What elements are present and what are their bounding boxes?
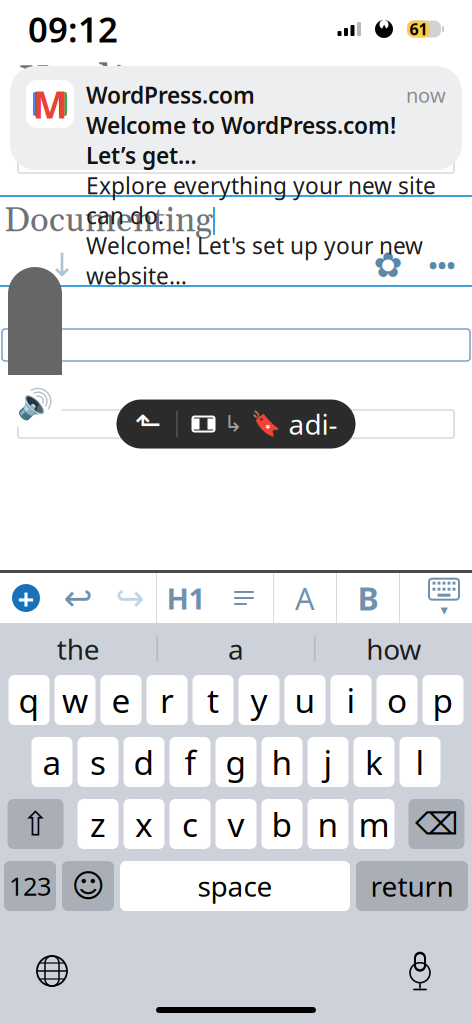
- button[interactable]: s: [77, 737, 118, 787]
- button[interactable]: d: [123, 737, 164, 787]
- staticText: now: [406, 82, 446, 108]
- staticText: ☺: [71, 868, 104, 904]
- button[interactable]: Dismiss keyboard: [416, 573, 472, 623]
- button[interactable]: n: [307, 799, 348, 849]
- staticText: f: [184, 740, 195, 784]
- staticText: ↓: [48, 247, 75, 283]
- staticText: t: [207, 678, 219, 722]
- staticText: 123: [9, 869, 51, 903]
- button[interactable]: Next keyboard: [22, 948, 82, 994]
- staticText: ⇧: [21, 805, 49, 843]
- button[interactable]: f: [169, 737, 210, 787]
- staticText: k: [365, 740, 383, 784]
- button[interactable]: r: [146, 675, 187, 725]
- button[interactable]: Dictate: [390, 948, 450, 994]
- staticText: A: [295, 578, 315, 618]
- button[interactable]: Text color: [274, 573, 336, 623]
- button[interactable]: H1: [157, 573, 215, 623]
- staticText: •••: [428, 249, 455, 281]
- staticText: Welcome! Let's set up your new website…: [86, 230, 423, 291]
- button[interactable]: z: [77, 799, 118, 849]
- staticText: x: [135, 802, 153, 846]
- button[interactable]: m: [353, 799, 394, 849]
- staticText: o: [387, 678, 407, 722]
- button[interactable]: k: [353, 737, 394, 787]
- button[interactable]: a: [31, 737, 72, 787]
- button[interactable]: the: [0, 623, 157, 675]
- staticText: c: [182, 802, 198, 846]
- button[interactable]: Emoji: [62, 861, 114, 911]
- button[interactable]: Add block: [0, 573, 52, 623]
- staticText: Heading: [288, 368, 337, 480]
- button[interactable]: h: [261, 737, 302, 787]
- staticText: 61: [409, 18, 427, 40]
- button[interactable]: Undo: [52, 573, 104, 623]
- staticText: y: [250, 678, 267, 722]
- button[interactable]: t: [192, 675, 233, 725]
- button[interactable]: b: [261, 799, 302, 849]
- button[interactable]: space: [120, 861, 350, 911]
- button[interactable]: ↳: [177, 400, 351, 448]
- button[interactable]: v: [215, 799, 256, 849]
- staticText: ↳: [223, 411, 242, 437]
- staticText: the: [57, 630, 100, 668]
- staticText: h: [271, 740, 292, 784]
- staticText: 🔖: [250, 410, 280, 438]
- staticText: z: [90, 802, 106, 846]
- button[interactable]: how: [315, 623, 472, 675]
- staticText: ⌫: [415, 807, 458, 841]
- staticText: e: [111, 678, 130, 722]
- button[interactable]: l: [399, 737, 440, 787]
- button[interactable]: o: [376, 675, 417, 725]
- button[interactable]: M: [10, 66, 462, 170]
- button[interactable]: Bold: [337, 573, 399, 623]
- staticText: WordPress.com: [86, 80, 255, 110]
- button[interactable]: Align: [215, 573, 273, 623]
- button[interactable]: g: [215, 737, 256, 787]
- staticText: B: [357, 577, 378, 619]
- staticText: space: [197, 867, 272, 905]
- button[interactable]: More options: [420, 245, 464, 285]
- button[interactable]: 123: [4, 861, 56, 911]
- staticText: M: [32, 79, 67, 129]
- staticText: b: [271, 802, 292, 846]
- staticText: H1: [166, 578, 205, 617]
- staticText: Explore everything your new site can do.: [86, 170, 436, 230]
- staticText: w: [62, 678, 88, 722]
- button[interactable]: Redo: [104, 573, 156, 623]
- staticText: Welcome to WordPress.com! Let’s get…: [86, 110, 396, 170]
- staticText: Documenting: [4, 199, 213, 243]
- staticText: s: [90, 740, 106, 784]
- staticText: i: [346, 678, 355, 722]
- button[interactable]: p: [422, 675, 463, 725]
- button[interactable]: x: [123, 799, 164, 849]
- staticText: 🔊: [16, 387, 53, 421]
- staticText: g: [225, 740, 246, 784]
- button[interactable]: c: [169, 799, 210, 849]
- staticText: ⬑: [135, 406, 162, 442]
- button[interactable]: e: [100, 675, 141, 725]
- button[interactable]: j: [307, 737, 348, 787]
- staticText: return: [370, 867, 453, 905]
- button[interactable]: w: [54, 675, 95, 725]
- staticText: m: [358, 802, 389, 846]
- button[interactable]: u: [284, 675, 325, 725]
- button[interactable]: Shift: [7, 799, 63, 849]
- staticText: l: [415, 740, 424, 784]
- staticText: j: [323, 740, 332, 784]
- staticText: n: [317, 802, 338, 846]
- button[interactable]: Block settings: [366, 245, 410, 285]
- button[interactable]: Move block down: [40, 245, 84, 285]
- staticText: ↩: [63, 578, 92, 618]
- button[interactable]: y: [238, 675, 279, 725]
- button[interactable]: a: [158, 623, 314, 675]
- staticText: 09:12: [28, 6, 118, 52]
- staticText: ↪: [115, 578, 144, 618]
- staticText: Kanli meetup: [18, 55, 288, 113]
- button[interactable]: i: [330, 675, 371, 725]
- button[interactable]: q: [8, 675, 49, 725]
- button[interactable]: Select parent block: [120, 400, 176, 448]
- button[interactable]: return: [356, 861, 468, 911]
- button[interactable]: Delete: [408, 799, 464, 849]
- staticText: u: [294, 678, 315, 722]
